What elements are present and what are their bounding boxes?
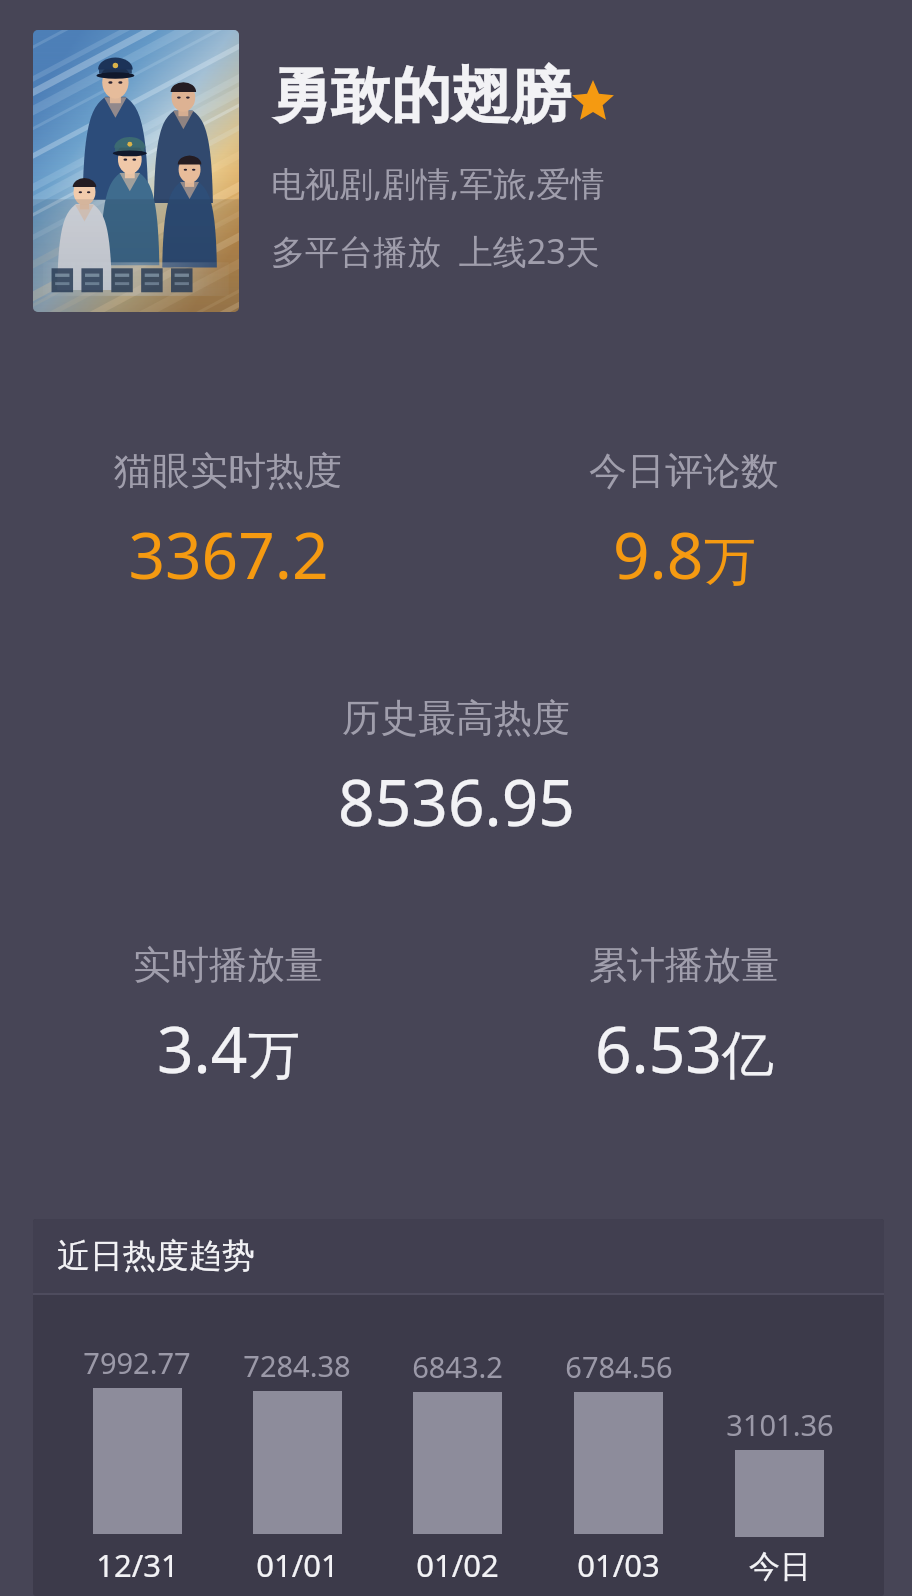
staticText: 12/31 xyxy=(96,1544,179,1586)
staticText: 6.53 xyxy=(595,1005,722,1092)
button[interactable]: 近日热度趋势 xyxy=(33,1219,884,1596)
staticText: 3.4 xyxy=(157,1005,248,1092)
staticText: 7284.38 xyxy=(243,1346,351,1385)
button[interactable]: 今日评论数 xyxy=(456,447,912,598)
staticText: 多平台播放 上线23天 xyxy=(271,228,600,274)
staticText: 累计播放量 xyxy=(589,941,779,989)
staticText: 6843.2 xyxy=(412,1347,503,1386)
staticText: 历史最高热度 xyxy=(342,694,570,742)
staticText: 猫眼实时热度 xyxy=(114,447,342,495)
staticText: 01/02 xyxy=(416,1544,499,1586)
staticText: 今日 xyxy=(749,1547,811,1586)
staticText: 01/01 xyxy=(256,1544,339,1586)
staticText: 近日热度趋势 xyxy=(57,1235,255,1277)
staticText: 3101.36 xyxy=(726,1405,834,1444)
staticText: 6784.56 xyxy=(565,1347,673,1386)
staticText: 3367.2 xyxy=(128,511,329,598)
button[interactable]: 剧集海报 xyxy=(33,30,239,312)
staticText: 01/03 xyxy=(577,1544,660,1586)
staticText: 今日评论数 xyxy=(589,447,779,495)
button[interactable]: 累计播放量 xyxy=(456,941,912,1092)
staticText: 勇敢的翅膀 xyxy=(271,58,571,134)
staticText: 亿 xyxy=(722,1023,774,1089)
staticText: 万 xyxy=(248,1023,300,1089)
button[interactable]: 剧集海报 xyxy=(0,0,912,312)
staticText: 9.8 xyxy=(613,511,704,598)
button[interactable]: 实时播放量 xyxy=(0,941,456,1092)
staticText: 万 xyxy=(704,529,756,595)
staticText: 7992.77 xyxy=(83,1343,191,1382)
staticText: 电视剧,剧情,军旅,爱情 xyxy=(271,160,605,206)
button[interactable]: 猫眼实时热度 xyxy=(0,447,456,598)
staticText: 8536.95 xyxy=(338,758,575,845)
staticText: 实时播放量 xyxy=(133,941,323,989)
button[interactable]: 历史最高热度 xyxy=(0,694,912,845)
